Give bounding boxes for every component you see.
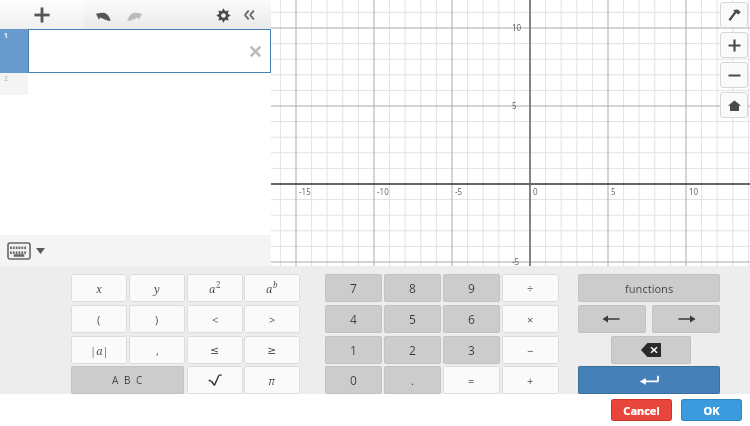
- button[interactable]: Backspace: [611, 336, 691, 364]
- button[interactable]: a: [187, 274, 243, 302]
- button[interactable]: 2: [384, 336, 441, 364]
- staticText: 2: [4, 74, 9, 84]
- button[interactable]: 1: [0, 29, 271, 73]
- staticText: 10: [512, 22, 522, 33]
- button[interactable]: Move left: [578, 305, 646, 333]
- button[interactable]: +: [502, 366, 559, 394]
- staticText: x: [96, 281, 103, 296]
- staticText: 6: [468, 311, 475, 327]
- staticText: A B C: [112, 373, 144, 387]
- staticText: 2: [216, 279, 221, 290]
- staticText: functions: [625, 281, 674, 296]
- button[interactable]: x: [71, 274, 127, 302]
- staticText: ): [155, 312, 159, 327]
- staticText: |a|: [90, 343, 109, 358]
- button[interactable]: [187, 366, 243, 394]
- button[interactable]: 4: [325, 305, 382, 333]
- button[interactable]: <: [187, 305, 243, 333]
- staticText: −: [527, 343, 534, 358]
- button[interactable]: OK: [681, 399, 742, 421]
- button[interactable]: (: [71, 305, 127, 333]
- staticText: 5: [611, 186, 616, 197]
- staticText: ≥: [267, 344, 277, 357]
- button[interactable]: Enter: [578, 366, 720, 394]
- button[interactable]: a: [244, 274, 300, 302]
- button[interactable]: Undo: [92, 6, 114, 24]
- button[interactable]: ): [129, 305, 185, 333]
- button[interactable]: 0: [325, 366, 382, 394]
- staticText: 8: [409, 280, 416, 296]
- staticText: ,: [156, 343, 159, 358]
- button[interactable]: ≥: [244, 336, 300, 364]
- staticText: ≤: [210, 344, 220, 357]
- staticText: 10: [689, 186, 699, 197]
- staticText: 1: [4, 31, 9, 41]
- button[interactable]: 2: [0, 73, 271, 95]
- staticText: +: [527, 373, 534, 388]
- button[interactable]: functions: [578, 274, 720, 302]
- button[interactable]: Move right: [652, 305, 720, 333]
- button[interactable]: =: [443, 366, 500, 394]
- staticText: .: [411, 373, 414, 388]
- staticText: OK: [703, 403, 720, 418]
- staticText: y: [154, 281, 160, 296]
- button[interactable]: −: [502, 336, 559, 364]
- button[interactable]: Cancel: [611, 399, 672, 421]
- staticText: 3: [468, 342, 475, 358]
- button[interactable]: ,: [129, 336, 185, 364]
- staticText: a: [266, 281, 273, 296]
- staticText: -5: [455, 186, 463, 197]
- staticText: b: [273, 279, 278, 290]
- staticText: 5: [512, 100, 517, 111]
- staticText: (: [97, 312, 101, 327]
- button[interactable]: Add row: [0, 0, 84, 29]
- staticText: π: [268, 373, 276, 388]
- button[interactable]: Zoom out: [720, 62, 748, 88]
- staticText: -10: [377, 186, 389, 197]
- button[interactable]: Settings: [212, 6, 234, 24]
- button[interactable]: 7: [325, 274, 382, 302]
- button[interactable]: 9: [443, 274, 500, 302]
- staticText: ×: [527, 312, 534, 327]
- staticText: 2: [409, 342, 416, 358]
- button[interactable]: Settings: [720, 2, 748, 28]
- button[interactable]: ×: [502, 305, 559, 333]
- button[interactable]: 6: [443, 305, 500, 333]
- button[interactable]: |a|: [71, 336, 127, 364]
- staticText: 5: [409, 311, 416, 327]
- button[interactable]: 3: [443, 336, 500, 364]
- button[interactable]: Keyboard: [8, 240, 45, 261]
- staticText: a: [209, 281, 216, 296]
- button[interactable]: Redo: [123, 6, 145, 24]
- staticText: <: [212, 312, 219, 327]
- staticText: 1: [350, 342, 357, 358]
- button[interactable]: 1: [325, 336, 382, 364]
- button[interactable]: 5: [384, 305, 441, 333]
- button[interactable]: Zoom in: [720, 32, 748, 58]
- staticText: 0: [533, 186, 538, 197]
- staticText: ÷: [527, 281, 534, 296]
- button[interactable]: ÷: [502, 274, 559, 302]
- button[interactable]: >: [244, 305, 300, 333]
- staticText: >: [269, 312, 276, 327]
- staticText: 4: [350, 311, 357, 327]
- button[interactable]: .: [384, 366, 441, 394]
- button[interactable]: Collapse panel: [238, 5, 262, 25]
- button[interactable]: ≤: [187, 336, 243, 364]
- button[interactable]: Clear row: [245, 41, 265, 61]
- staticText: 0: [350, 372, 357, 388]
- button[interactable]: y: [129, 274, 185, 302]
- staticText: 9: [468, 280, 475, 296]
- button[interactable]: 8: [384, 274, 441, 302]
- button[interactable]: π: [244, 366, 300, 394]
- staticText: 7: [350, 280, 357, 296]
- staticText: -15: [299, 186, 311, 197]
- staticText: Cancel: [623, 403, 660, 418]
- button[interactable]: Home: [720, 92, 748, 118]
- staticText: -5: [512, 256, 520, 267]
- button[interactable]: A B C: [71, 366, 184, 394]
- staticText: =: [468, 373, 475, 388]
